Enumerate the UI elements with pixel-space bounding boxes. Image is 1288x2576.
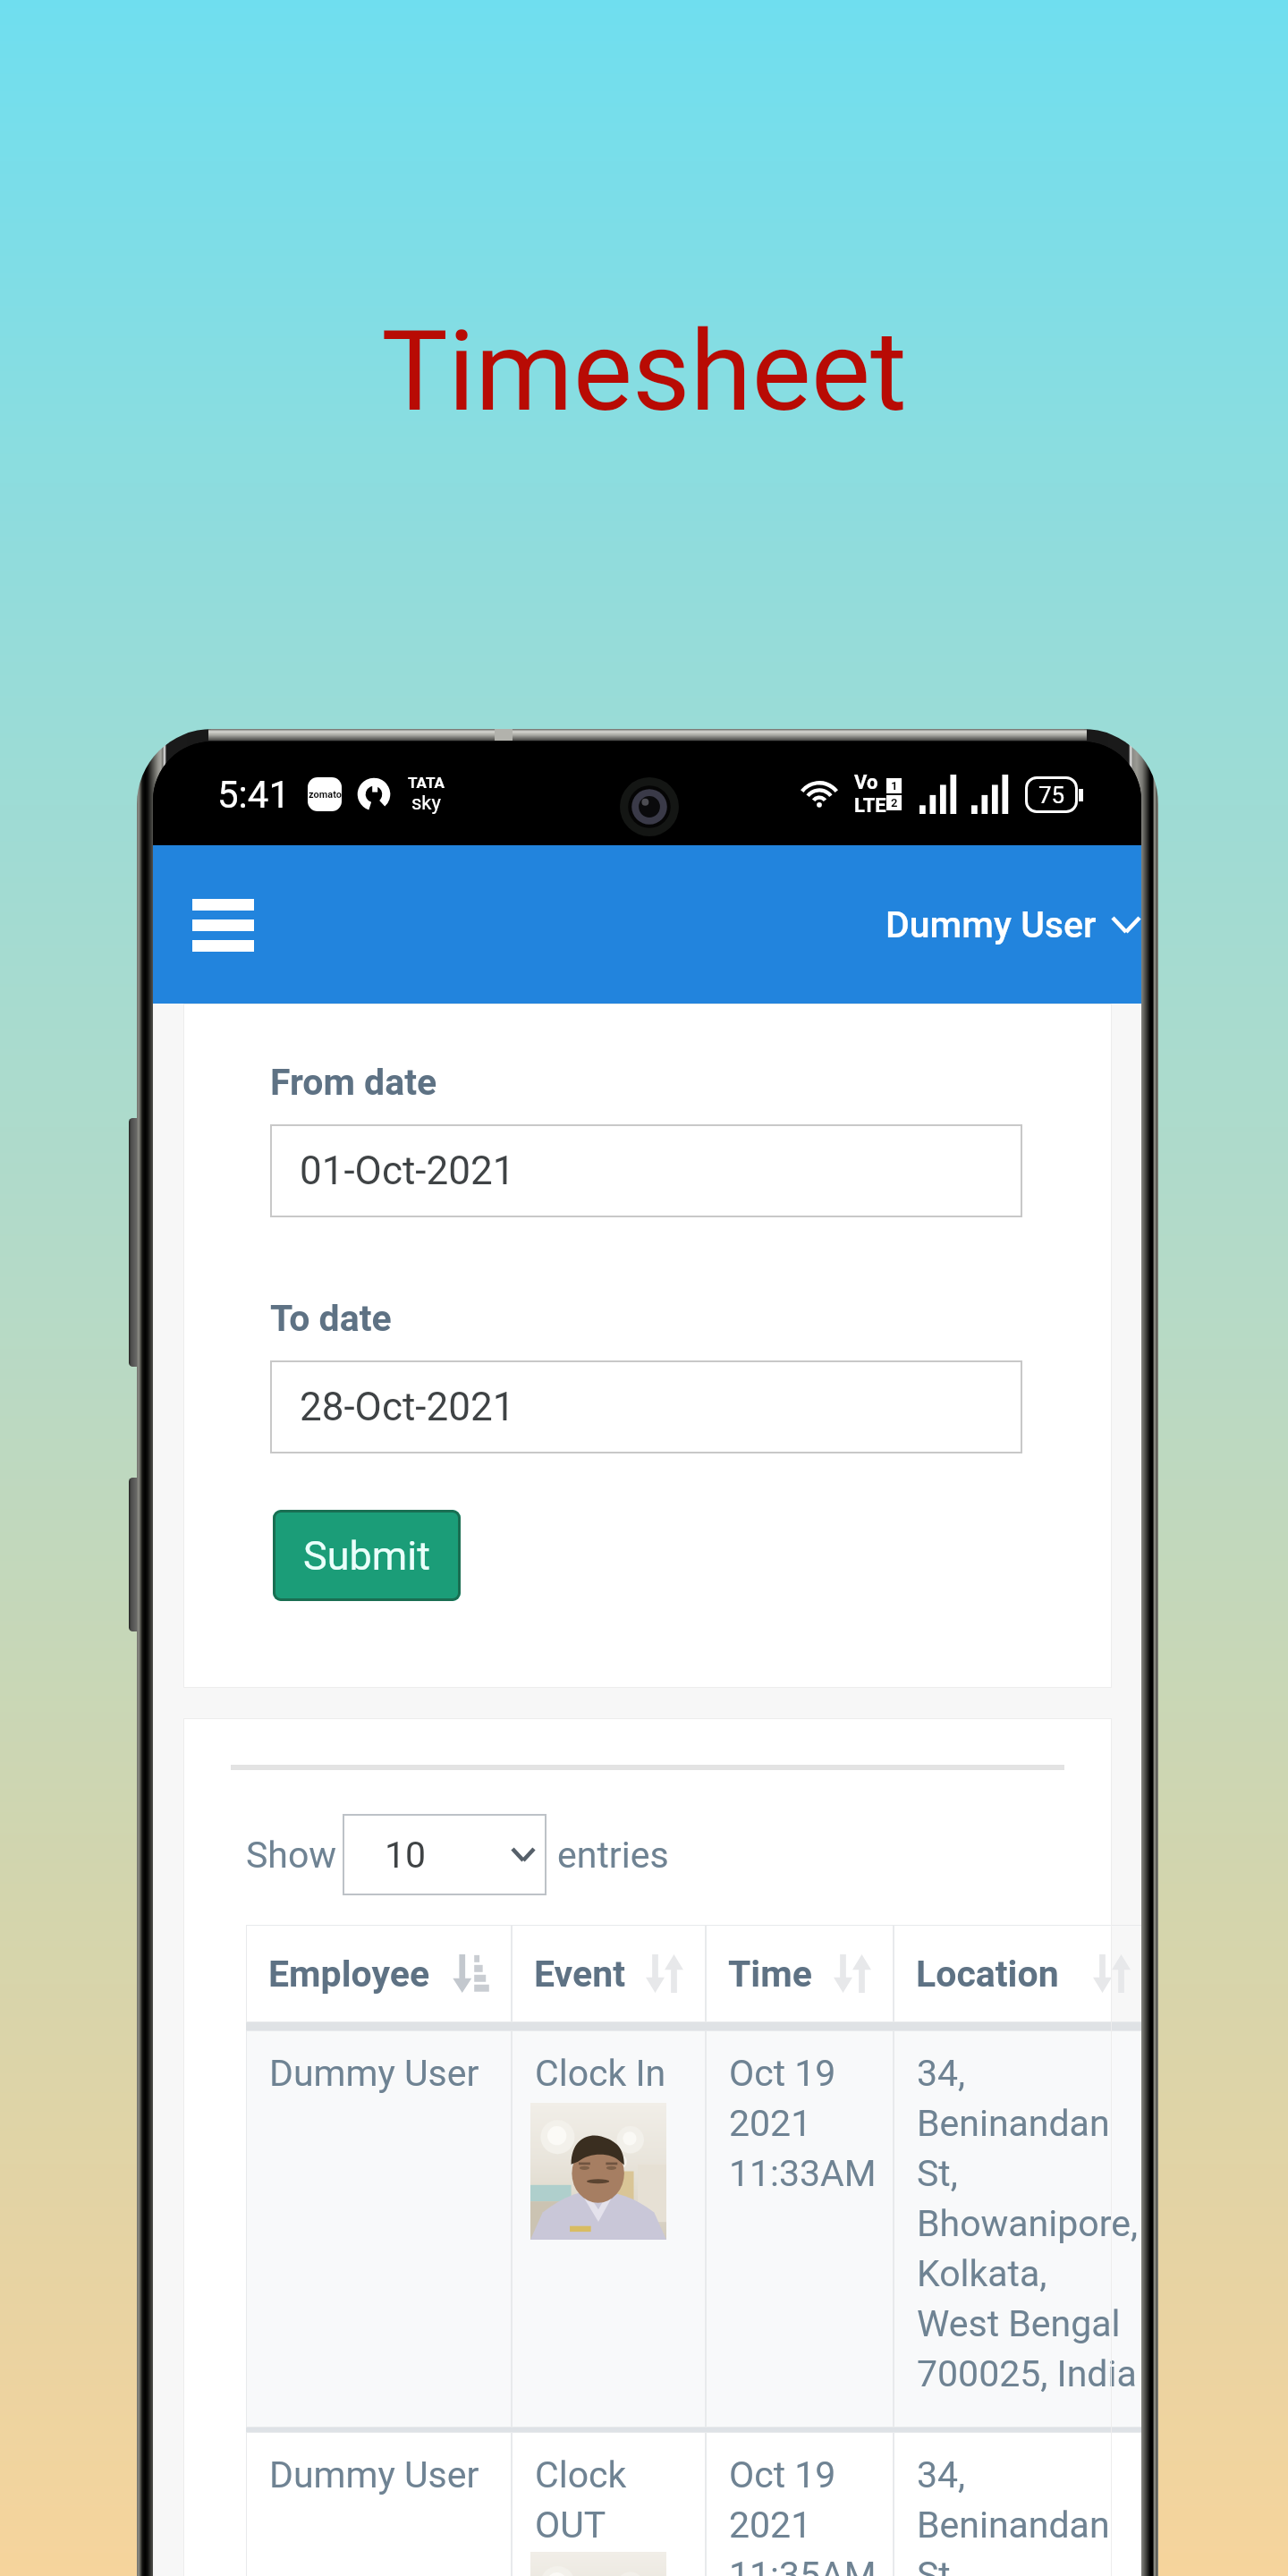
button[interactable]: 10 [343, 1814, 547, 1895]
staticText: Dummy User [269, 2453, 479, 2496]
staticText: entries [557, 1834, 669, 1877]
staticText: Time [728, 1953, 812, 1996]
button[interactable]: Time [706, 1925, 894, 2022]
staticText: TATA [408, 774, 445, 792]
button[interactable]: Dummy User [880, 898, 1141, 952]
button[interactable]: Dummy User [246, 2432, 1141, 2576]
button[interactable]: Dummy User [246, 2030, 1141, 2428]
staticText: Vo [854, 771, 878, 794]
staticText: Clock In [535, 2052, 666, 2095]
staticText: To date [270, 1297, 392, 1340]
staticText: Show [246, 1834, 337, 1877]
staticText: Oct 19 2021 11:35AM [729, 2453, 877, 2576]
staticText: 34, Beninandan St, Bhowanipore, Kolkata,… [917, 2052, 1138, 2395]
staticText: 01-Oct-2021 [300, 1148, 515, 1194]
staticText: 2 [891, 796, 898, 809]
staticText: Dummy User [885, 903, 1097, 946]
staticText: Oct 19 2021 11:33AM [729, 2052, 877, 2195]
staticText: Event [534, 1953, 625, 1996]
button[interactable]: 28-Oct-2021 [270, 1360, 1022, 1453]
button[interactable]: Location [894, 1925, 1141, 2022]
staticText: Timesheet [381, 306, 907, 436]
staticText: 5:41 [217, 773, 290, 817]
staticText: From date [270, 1061, 437, 1104]
staticText: sky [411, 792, 441, 815]
staticText: zomato [309, 789, 342, 801]
button[interactable]: Open navigation menu [171, 875, 275, 975]
button[interactable]: Submit [273, 1510, 461, 1601]
staticText: Employee [268, 1953, 430, 1996]
staticText: 34, Beninandan St, [917, 2453, 1110, 2576]
staticText: Dummy User [269, 2052, 479, 2095]
staticText: Location [916, 1953, 1059, 1996]
staticText: 1 [891, 779, 898, 792]
button[interactable]: Employee [246, 1925, 512, 2022]
staticText: Submit [303, 1532, 430, 1580]
button[interactable]: 01-Oct-2021 [270, 1124, 1022, 1217]
button[interactable]: Event [512, 1925, 706, 2022]
staticText: 10 [385, 1834, 427, 1877]
staticText: LTE [854, 794, 886, 818]
staticText: Clock OUT [535, 2453, 627, 2546]
staticText: 75 [1038, 782, 1065, 809]
staticText: 28-Oct-2021 [300, 1384, 515, 1430]
